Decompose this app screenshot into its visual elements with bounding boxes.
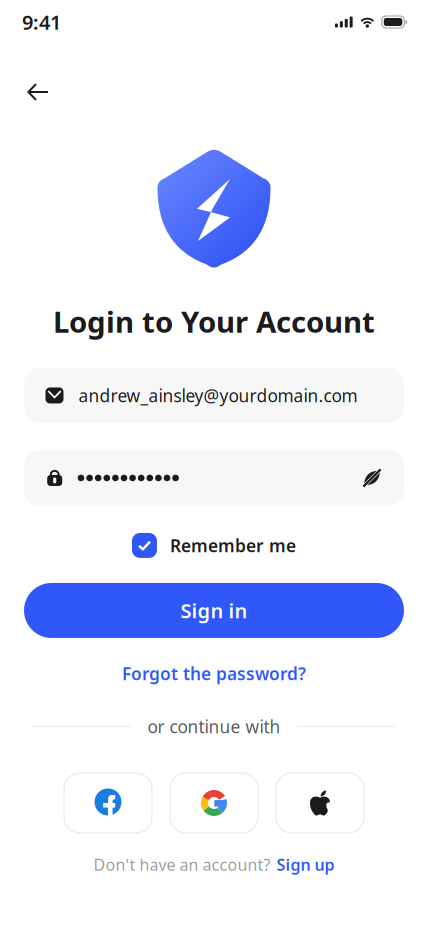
staticText: Remember me: [170, 534, 296, 557]
staticText: Sign in: [180, 597, 247, 624]
staticText: andrew_ainsley@yourdomain.com: [78, 384, 357, 407]
staticText: Sign up: [276, 854, 334, 875]
button[interactable]: Remember me: [132, 533, 296, 558]
button[interactable]: Continue with Google: [170, 773, 258, 833]
staticText: Don't have an account?: [93, 854, 270, 875]
button[interactable]: Forgot the password?: [122, 662, 306, 685]
button[interactable]: Back: [16, 71, 60, 112]
button[interactable]: Continue with Facebook: [64, 773, 152, 833]
staticText: Forgot the password?: [122, 662, 306, 685]
staticText: Login to Your Account: [53, 302, 375, 341]
button[interactable]: Show password: [362, 468, 382, 488]
staticText: 9:41: [22, 9, 61, 35]
button[interactable]: Sign in: [0, 583, 428, 638]
staticText: or continue with: [147, 715, 280, 738]
button[interactable]: Continue with Apple: [276, 773, 364, 833]
button[interactable]: Sign up: [276, 854, 334, 875]
